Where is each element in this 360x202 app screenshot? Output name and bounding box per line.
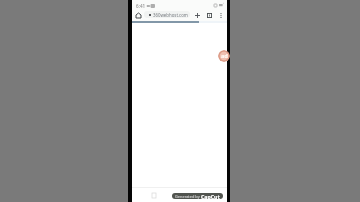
staticText: 6:41 [136,3,146,9]
button[interactable]: Tabs [204,10,214,20]
button[interactable]: Home [133,10,143,20]
staticText: CapCut [201,193,220,199]
button[interactable]: 360webhost.com [144,11,190,18]
button[interactable]: Generated by [172,193,223,199]
staticText: ad [221,52,228,60]
button[interactable]: More options [216,10,226,20]
button[interactable]: Ad badge [218,50,230,62]
staticText: Generated by [175,194,200,199]
staticText: 360webhost.com [153,12,188,18]
button[interactable]: Checkbox [150,191,158,199]
button[interactable]: New tab [192,10,202,20]
